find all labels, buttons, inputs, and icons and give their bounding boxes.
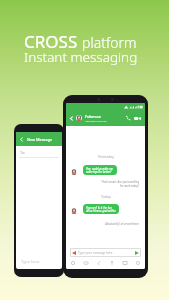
button[interactable]: Microphone — [109, 260, 115, 266]
staticText: Instant messaging — [24, 48, 138, 66]
staticText: Absolutely! Let's meet there — [105, 222, 139, 226]
button[interactable]: Emoji — [70, 260, 76, 266]
staticText: That's smart. Are you travelling for wor… — [101, 180, 139, 187]
button[interactable]: That's smart. Are you travelling for wor… — [100, 180, 140, 187]
staticText: Type here — [21, 259, 40, 264]
staticText: CROSS — [24, 30, 78, 53]
other: Back — [69, 116, 74, 121]
staticText: Hey, could provide me some tips for bett… — [86, 167, 114, 173]
button[interactable]: Attach — [70, 248, 141, 257]
staticText: To: — [20, 150, 26, 155]
other: Attach — [72, 251, 76, 255]
button[interactable]: Absolutely! Let's meet there — [104, 222, 140, 226]
staticText: How are? Is it the fun office fitness go… — [86, 206, 116, 212]
button[interactable]: Hey, could provide me some tips for bett… — [83, 165, 117, 175]
other: Send — [135, 251, 139, 255]
other: Call — [125, 115, 131, 121]
staticText: Yesterday — [98, 154, 114, 159]
button[interactable]: Attach file — [96, 260, 102, 266]
staticText: New Message — [27, 137, 53, 142]
staticText: Today — [101, 194, 111, 199]
button[interactable]: How are? Is it the fun office fitness go… — [83, 204, 119, 214]
staticText: Type your message here — [78, 251, 113, 255]
staticText: Last seen 12:45 PM — [85, 119, 107, 122]
other: Back — [19, 137, 24, 142]
button[interactable]: Gallery — [122, 260, 128, 266]
button[interactable]: Back — [16, 132, 62, 146]
button[interactable]: Camera — [83, 260, 89, 266]
staticText: platform — [82, 33, 137, 52]
button[interactable]: More — [135, 260, 141, 266]
button[interactable]: Back — [66, 110, 145, 126]
staticText: Patterson — [85, 114, 101, 119]
other: Video call — [134, 115, 141, 122]
